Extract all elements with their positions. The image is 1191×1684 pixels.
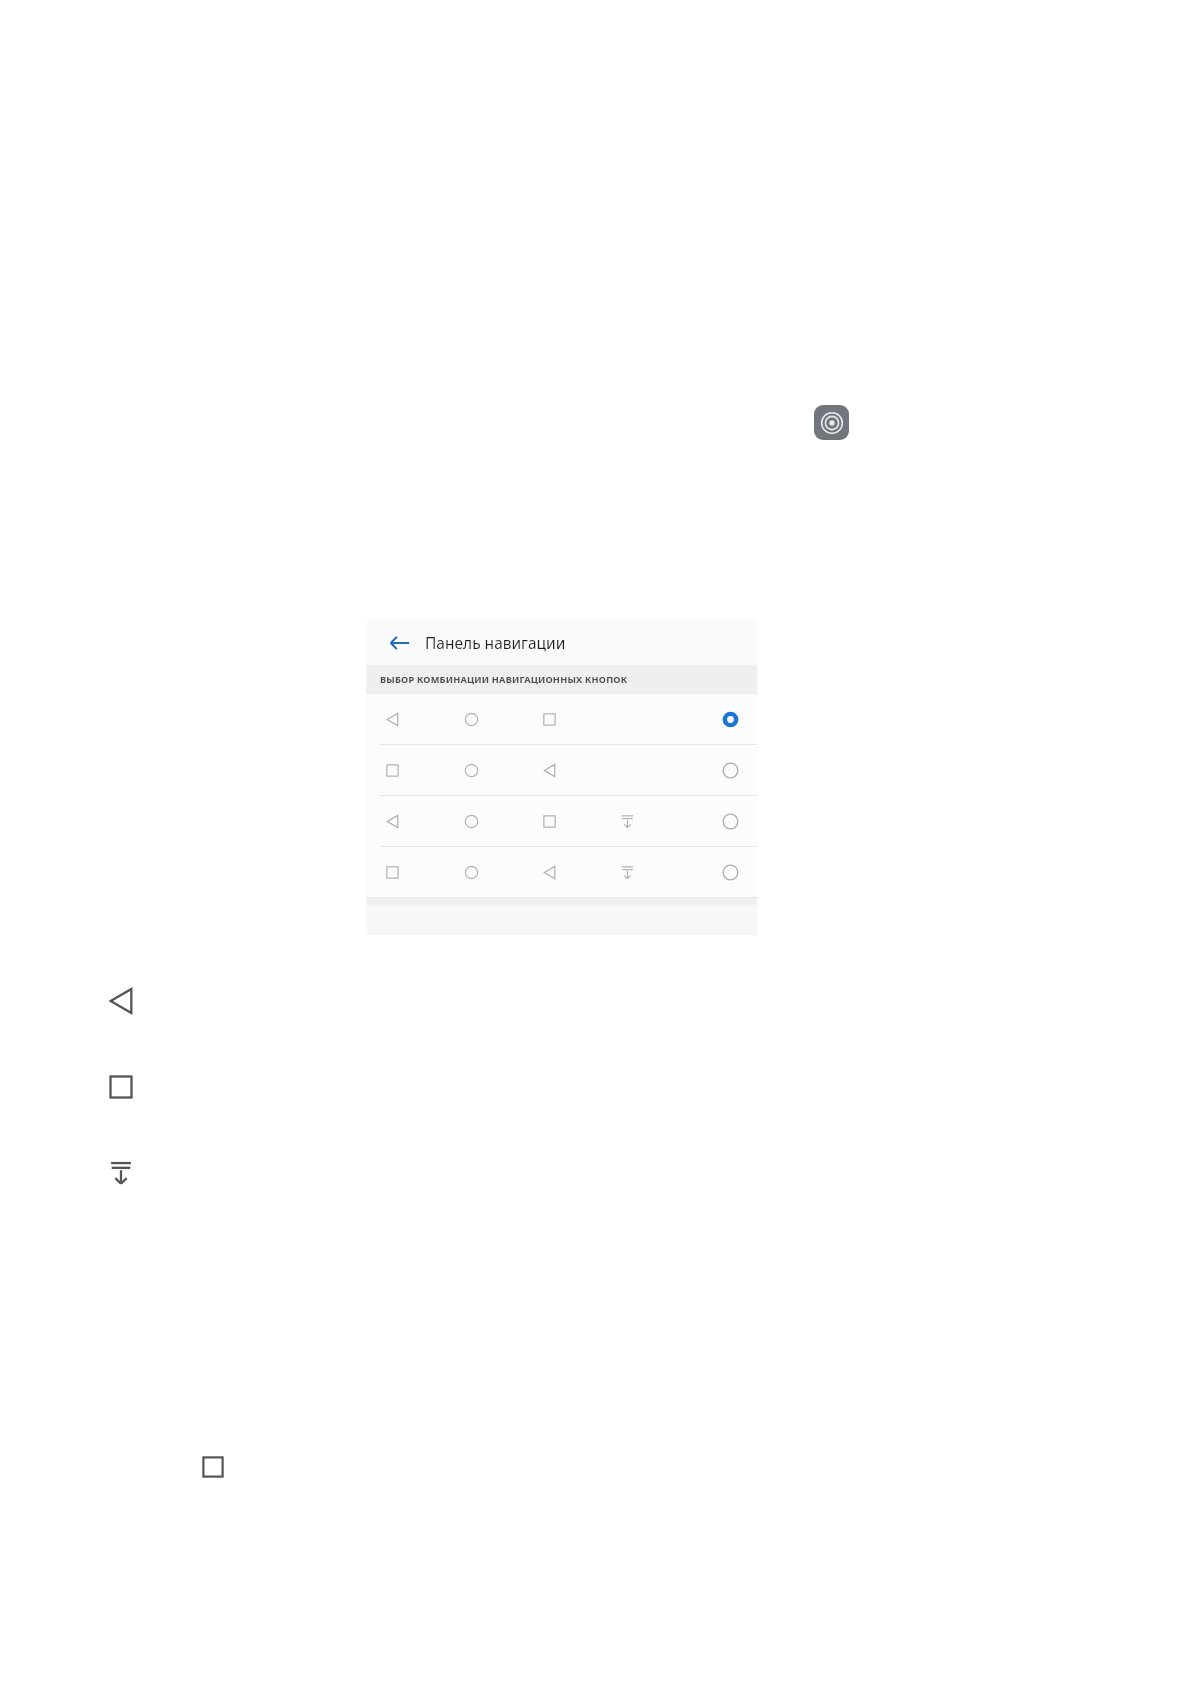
- button[interactable]: Hide navigation bar: [104, 1156, 138, 1190]
- button[interactable]: Back: [386, 629, 414, 657]
- button[interactable]: [366, 694, 757, 744]
- button[interactable]: Recents: [104, 1070, 138, 1104]
- button[interactable]: [366, 847, 757, 897]
- button[interactable]: Back: [104, 984, 138, 1018]
- button[interactable]: Contact: [814, 405, 849, 440]
- staticText: Панель навигации: [425, 632, 566, 653]
- staticText: ВЫБОР КОМБИНАЦИИ НАВИГАЦИОННЫХ КНОПОК: [380, 673, 628, 686]
- button[interactable]: Recents: [196, 1450, 230, 1484]
- button[interactable]: [366, 796, 757, 846]
- button[interactable]: [366, 745, 757, 795]
